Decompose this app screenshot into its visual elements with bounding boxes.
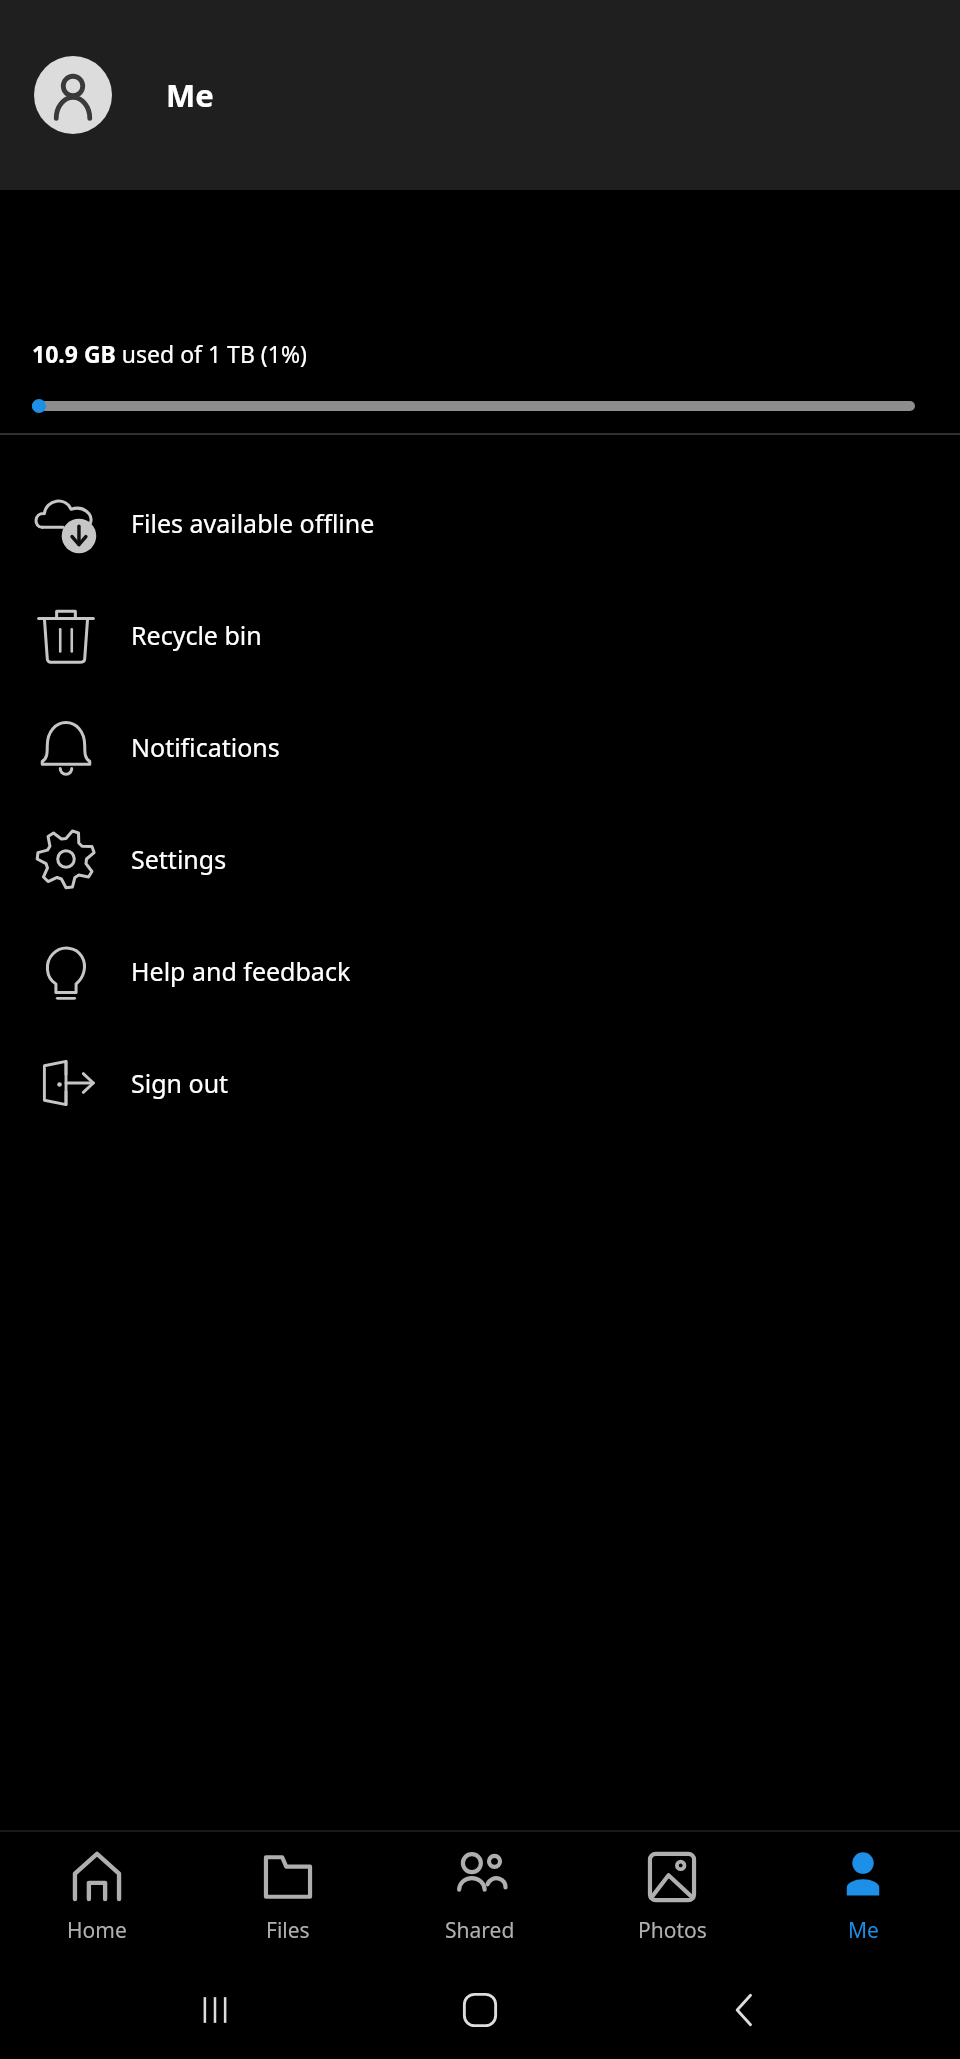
staticText: Files available offline: [131, 506, 375, 540]
button[interactable]: Me: [768, 1840, 958, 1953]
button[interactable]: Account: [34, 56, 112, 134]
staticText: Files: [266, 1916, 310, 1945]
button[interactable]: Settings: [0, 803, 960, 915]
staticText: Photos: [638, 1916, 707, 1945]
button[interactable]: Sign out: [0, 1027, 960, 1139]
button[interactable]: Photos: [577, 1840, 767, 1953]
staticText: Notifications: [131, 730, 280, 764]
staticText: Shared: [445, 1916, 515, 1945]
staticText: Help and feedback: [131, 954, 351, 988]
staticText: Settings: [131, 842, 227, 876]
staticText: Me: [166, 74, 214, 116]
button[interactable]: Files available offline: [0, 467, 960, 579]
button[interactable]: Back: [695, 1960, 795, 2059]
button[interactable]: Notifications: [0, 691, 960, 803]
staticText: Me: [848, 1916, 879, 1945]
staticText: Sign out: [131, 1066, 229, 1100]
staticText: Home: [67, 1916, 127, 1945]
button[interactable]: Recents: [165, 1960, 265, 2059]
button[interactable]: 10.9 GB used of 1 TB (1%): [0, 338, 960, 413]
button[interactable]: Shared: [385, 1840, 575, 1953]
staticText: Recycle bin: [131, 618, 262, 652]
button[interactable]: Files: [193, 1840, 383, 1953]
button[interactable]: Home: [430, 1960, 530, 2059]
button[interactable]: Help and feedback: [0, 915, 960, 1027]
button[interactable]: Home: [2, 1840, 192, 1953]
staticText: 10.9 GB used of 1 TB (1%): [32, 338, 307, 369]
button[interactable]: Recycle bin: [0, 579, 960, 691]
